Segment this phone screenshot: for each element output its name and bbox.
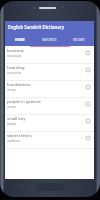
button[interactable]: English Sanskrit Dictionary xyxy=(5,21,94,33)
staticText: FAVORITE xyxy=(42,38,57,42)
button[interactable]: sweet letters xyxy=(5,132,94,148)
button[interactable]: Bookmark xyxy=(82,64,94,76)
button[interactable]: Bookmark xyxy=(82,98,94,110)
staticText: small boy xyxy=(7,116,26,122)
staticText: people in general xyxy=(7,99,41,105)
button[interactable]: Bookmark xyxy=(82,81,94,93)
staticText: hoarding xyxy=(7,65,25,71)
button[interactable]: humbleness xyxy=(5,81,94,97)
staticText: RECENT xyxy=(73,38,85,42)
staticText: madhura xyxy=(7,139,20,143)
staticText: vinaya xyxy=(7,88,17,92)
staticText: janata xyxy=(7,105,16,109)
button[interactable]: hoarding xyxy=(5,64,94,80)
button[interactable]: Bookmark xyxy=(82,115,94,127)
staticText: HOME xyxy=(15,38,25,42)
staticText: balaka xyxy=(7,122,17,126)
button[interactable]: HOME xyxy=(5,33,34,46)
staticText: vyavasaya xyxy=(7,54,22,58)
button[interactable]: Bookmark xyxy=(82,47,94,59)
staticText: sweet letters xyxy=(7,133,32,139)
staticText: English Sanskrit Dictionary xyxy=(8,24,64,30)
button[interactable]: FAVORITE xyxy=(34,33,64,46)
button[interactable]: people in general xyxy=(5,98,94,114)
staticText: business xyxy=(7,48,24,54)
staticText: humbleness xyxy=(7,82,31,88)
button[interactable]: small boy xyxy=(5,115,94,131)
staticText: samgraha xyxy=(7,71,22,75)
button[interactable]: Bookmark xyxy=(82,132,94,144)
button[interactable]: business xyxy=(5,47,94,63)
button[interactable]: RECENT xyxy=(64,33,94,46)
